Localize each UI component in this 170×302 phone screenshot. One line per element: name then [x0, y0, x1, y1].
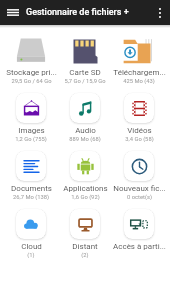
button[interactable]: Images — [4, 84, 58, 142]
staticText: Stockage pri... — [6, 68, 57, 77]
button[interactable]: Accès à parti... — [112, 200, 166, 258]
staticText: Audio — [75, 126, 96, 135]
staticText: (1) — [27, 252, 35, 258]
staticText: 3,4 Go (58) — [125, 136, 154, 142]
button[interactable]: Vidéos — [112, 84, 166, 142]
staticText: 5,7 Go / 15,9 Go — [64, 78, 106, 84]
button[interactable]: Cloud — [4, 200, 58, 258]
button[interactable]: Stockage pri... — [4, 26, 58, 84]
button[interactable]: Documents — [4, 142, 58, 200]
staticText: Vidéos — [127, 126, 152, 135]
staticText: 889 Mo (68) — [69, 136, 101, 142]
staticText: Applications — [63, 184, 108, 193]
button[interactable]: Applications — [58, 142, 112, 200]
button[interactable]: Téléchargem... — [112, 26, 166, 84]
button[interactable]: Nouveaux fic... — [112, 142, 166, 200]
button[interactable]: Carte SD — [58, 26, 112, 84]
staticText: Distant — [72, 242, 98, 251]
staticText: Documents — [11, 184, 52, 193]
staticText: (2) — [81, 252, 89, 258]
staticText: Carte SD — [69, 68, 101, 77]
staticText: 0 octet(s) — [127, 194, 152, 200]
staticText: 1,6 Go (92) — [71, 194, 100, 200]
staticText: Téléchargem... — [113, 68, 166, 77]
staticText: 425 Mo (43) — [123, 78, 155, 84]
staticText: 1,2 Go (755) — [15, 136, 47, 142]
staticText: Gestionnaire de fichiers + — [26, 7, 129, 18]
button[interactable]: More options — [150, 0, 170, 25]
button[interactable]: Audio — [58, 84, 112, 142]
staticText: 29,5 Go / 64 Go — [11, 78, 52, 84]
button[interactable]: Distant — [58, 200, 112, 258]
staticText: Images — [18, 126, 45, 135]
staticText: Cloud — [21, 242, 42, 251]
staticText: 26,7 Mo (138) — [13, 194, 49, 200]
button[interactable]: Menu — [0, 0, 26, 25]
staticText: Nouveaux fic... — [113, 184, 166, 193]
staticText: Accès à parti... — [113, 242, 166, 251]
